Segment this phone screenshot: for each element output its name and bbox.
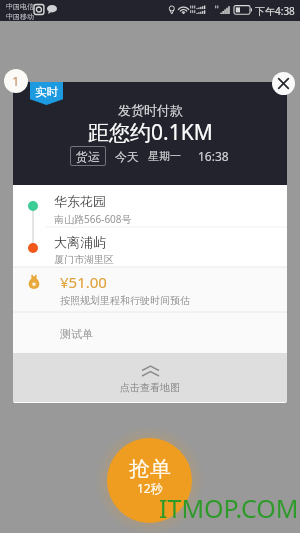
staticText: 发货时付款 [118, 102, 183, 118]
button[interactable]: Close [272, 72, 295, 95]
staticText: ITMOP.COM [159, 491, 299, 525]
staticText: 大离浦屿 [54, 234, 106, 250]
staticText: 12秒 [137, 480, 163, 496]
staticText: 厦门市湖里区 [54, 253, 114, 266]
staticText: 中国移动 [6, 12, 34, 21]
button[interactable]: 点击查看地图 [13, 353, 287, 402]
button[interactable]: 抢单 [107, 438, 192, 523]
staticText: 1 [12, 72, 20, 90]
staticText: 今天 [115, 149, 139, 164]
staticText: 距您约0.1KM [88, 118, 213, 147]
staticText: 中国电信 [6, 2, 34, 11]
staticText: 抢单 [129, 456, 171, 482]
staticText: 实时 [35, 85, 58, 99]
staticText: 南山路566-608号 [54, 212, 132, 226]
staticText: 华东花园 [54, 193, 106, 209]
button[interactable]: 1 [4, 69, 28, 93]
staticText: ¥51.00 [60, 272, 107, 292]
staticText: 按照规划里程和行驶时间预估 [60, 294, 190, 307]
staticText: 点击查看地图 [120, 381, 180, 394]
staticText: 16:38 [198, 148, 229, 164]
staticText: 货运 [76, 149, 100, 164]
staticText: 下午4:38 [255, 4, 295, 18]
staticText: 测试单 [60, 327, 93, 341]
staticText: 星期一 [148, 149, 181, 163]
